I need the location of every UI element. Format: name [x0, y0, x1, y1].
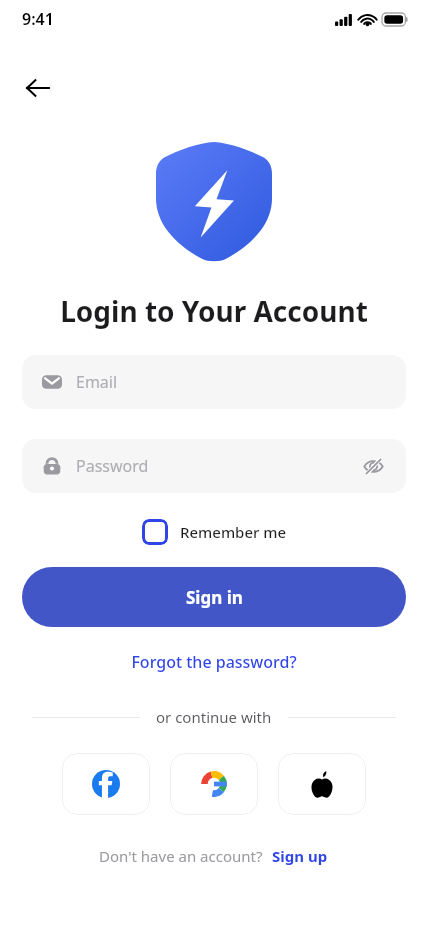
button[interactable]: Sign in with Facebook — [62, 753, 150, 815]
button[interactable]: Password — [22, 439, 406, 493]
staticText: or continue with — [156, 707, 272, 727]
staticText: Sign in — [186, 586, 243, 609]
staticText: Email — [76, 371, 386, 393]
staticText: Login to Your Account — [0, 292, 428, 330]
staticText: Don't have an account? — [99, 846, 263, 866]
button[interactable]: Sign up — [270, 843, 330, 869]
button[interactable]: Back — [16, 70, 60, 106]
button[interactable]: Sign in with Apple — [278, 753, 366, 815]
staticText: Password — [76, 455, 360, 477]
button[interactable]: Show password — [360, 453, 386, 479]
button[interactable]: Forgot the password? — [0, 647, 428, 677]
button[interactable]: Sign in — [22, 567, 406, 627]
button[interactable]: Sign in with Google — [170, 753, 258, 815]
button[interactable]: Remember me — [136, 515, 293, 549]
staticText: Sign up — [272, 846, 328, 866]
button[interactable]: Email — [22, 355, 406, 409]
staticText: 9:41 — [22, 8, 54, 30]
staticText: Remember me — [180, 522, 287, 542]
